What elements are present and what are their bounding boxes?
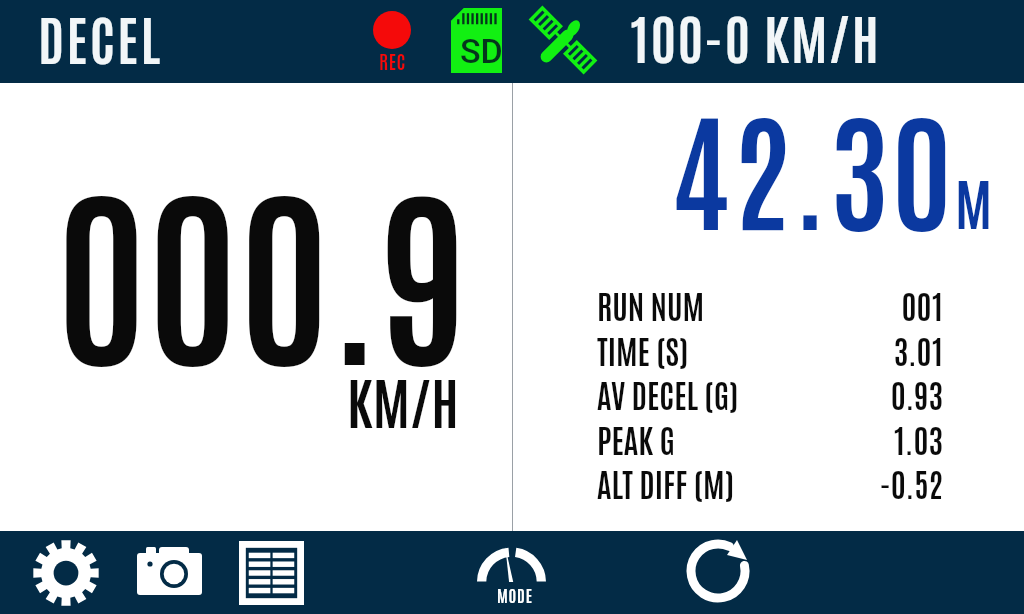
staticText: 100-0 KM/H xyxy=(630,1,881,71)
staticText: REC xyxy=(379,48,407,73)
staticText: MODE xyxy=(497,585,533,606)
button[interactable]: SD card xyxy=(451,8,502,73)
staticText: AV DECEL (G) xyxy=(597,373,739,413)
staticText: 001 xyxy=(705,284,943,324)
staticText: DECEL xyxy=(38,2,163,72)
staticText: 42.30 xyxy=(671,80,956,248)
staticText: RUN NUM xyxy=(597,284,705,324)
staticText: PEAK G xyxy=(597,418,675,458)
staticText: -0.52 xyxy=(735,462,943,502)
staticText: KM/H xyxy=(347,364,459,435)
button[interactable]: Mode xyxy=(477,546,546,603)
staticText: 3.01 xyxy=(689,329,943,369)
staticText: 1.03 xyxy=(675,418,943,458)
staticText: TIME (S) xyxy=(597,329,689,369)
staticText: ALT DIFF (M) xyxy=(597,462,735,502)
staticText: M xyxy=(955,165,993,236)
button[interactable]: Settings xyxy=(33,540,99,606)
button[interactable]: Reset xyxy=(680,533,756,609)
staticText: SD xyxy=(460,31,503,71)
button[interactable]: GPS satellite xyxy=(531,7,595,73)
button[interactable]: Recording xyxy=(371,11,414,71)
staticText: 0.93 xyxy=(739,373,943,413)
staticText: 000.9 xyxy=(56,141,468,392)
button[interactable]: Results table xyxy=(239,541,304,605)
button[interactable]: Camera xyxy=(137,547,202,595)
